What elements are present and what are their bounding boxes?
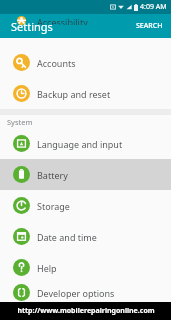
staticText: Language and input xyxy=(37,138,123,150)
staticText: Battery xyxy=(37,169,68,181)
staticText: Date and time xyxy=(37,231,97,243)
button[interactable]: Battery xyxy=(0,159,171,190)
button[interactable]: Storage xyxy=(0,190,171,221)
staticText: 4:09 AM xyxy=(140,2,167,12)
button[interactable]: Date and time xyxy=(0,221,171,252)
staticText: Help xyxy=(37,262,57,274)
button[interactable]: Search xyxy=(128,14,171,38)
staticText: Accounts xyxy=(37,57,76,69)
staticText: http://www.mobilerepairingonline.com xyxy=(17,306,155,316)
staticText: Settings xyxy=(11,19,53,34)
staticText: System xyxy=(7,117,33,127)
button[interactable]: Help xyxy=(0,252,171,283)
staticText: SEARCH xyxy=(136,21,163,31)
staticText: Backup and reset xyxy=(37,88,111,100)
button[interactable]: Developer options xyxy=(0,283,171,302)
staticText: Developer options xyxy=(37,287,115,299)
staticText: Accessibility xyxy=(37,16,88,25)
staticText: Storage xyxy=(37,200,70,212)
button[interactable]: Language and input xyxy=(0,128,171,159)
button[interactable]: Backup and reset xyxy=(0,78,171,109)
button[interactable]: Accounts xyxy=(0,47,171,78)
